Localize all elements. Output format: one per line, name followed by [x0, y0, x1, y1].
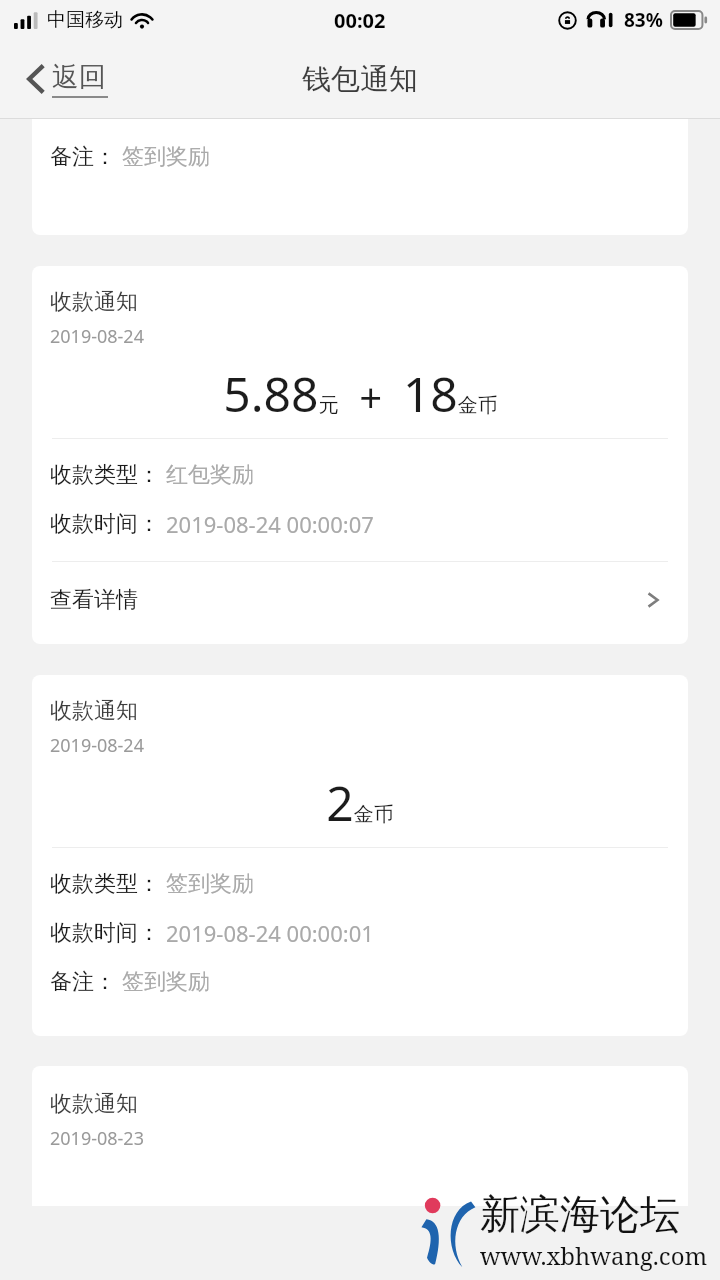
staticText: 备注：	[50, 968, 116, 996]
button[interactable]: 收款通知	[32, 266, 688, 644]
staticText: 新滨海论坛	[480, 1189, 680, 1239]
staticText: 查看详情	[50, 586, 138, 614]
staticText: 返回	[52, 60, 106, 94]
staticText: 签到奖励	[122, 143, 210, 171]
button[interactable]: 收款通知	[32, 1066, 688, 1206]
staticText: 收款类型：	[50, 870, 160, 898]
staticText: 2019-08-24	[50, 324, 144, 349]
staticText: 签到奖励	[166, 870, 254, 898]
staticText: www.xbhwang.com	[480, 1239, 708, 1272]
staticText: 收款类型：	[50, 461, 160, 489]
staticText: 收款通知	[50, 697, 138, 725]
staticText: 钱包通知	[302, 61, 418, 98]
button[interactable]: 收款通知	[32, 675, 688, 1036]
staticText: 00:02	[334, 7, 386, 34]
staticText: 收款时间：	[50, 919, 160, 947]
button[interactable]: 查看详情	[32, 562, 688, 644]
staticText: 2019-08-24	[50, 733, 144, 758]
button[interactable]: 收款时间：	[32, 119, 688, 235]
staticText: 备注：	[50, 143, 116, 171]
staticText: 2金币	[326, 770, 394, 835]
staticText: 2019-08-24 00:00:07	[166, 509, 374, 539]
staticText: 收款通知	[50, 288, 138, 316]
staticText: 83%	[624, 7, 663, 33]
staticText: 中国移动	[47, 8, 123, 32]
staticText: 5.88元 + 18金币	[223, 361, 498, 426]
staticText: 2019-08-24 00:00:01	[166, 918, 374, 948]
other: 查看详情	[646, 589, 660, 611]
staticText: 收款时间：	[50, 510, 160, 538]
staticText: 红包奖励	[166, 461, 254, 489]
staticText: 2019-08-23	[50, 1126, 144, 1151]
staticText: 收款通知	[50, 1090, 138, 1118]
button[interactable]: 返回	[22, 54, 112, 104]
staticText: 签到奖励	[122, 968, 210, 996]
